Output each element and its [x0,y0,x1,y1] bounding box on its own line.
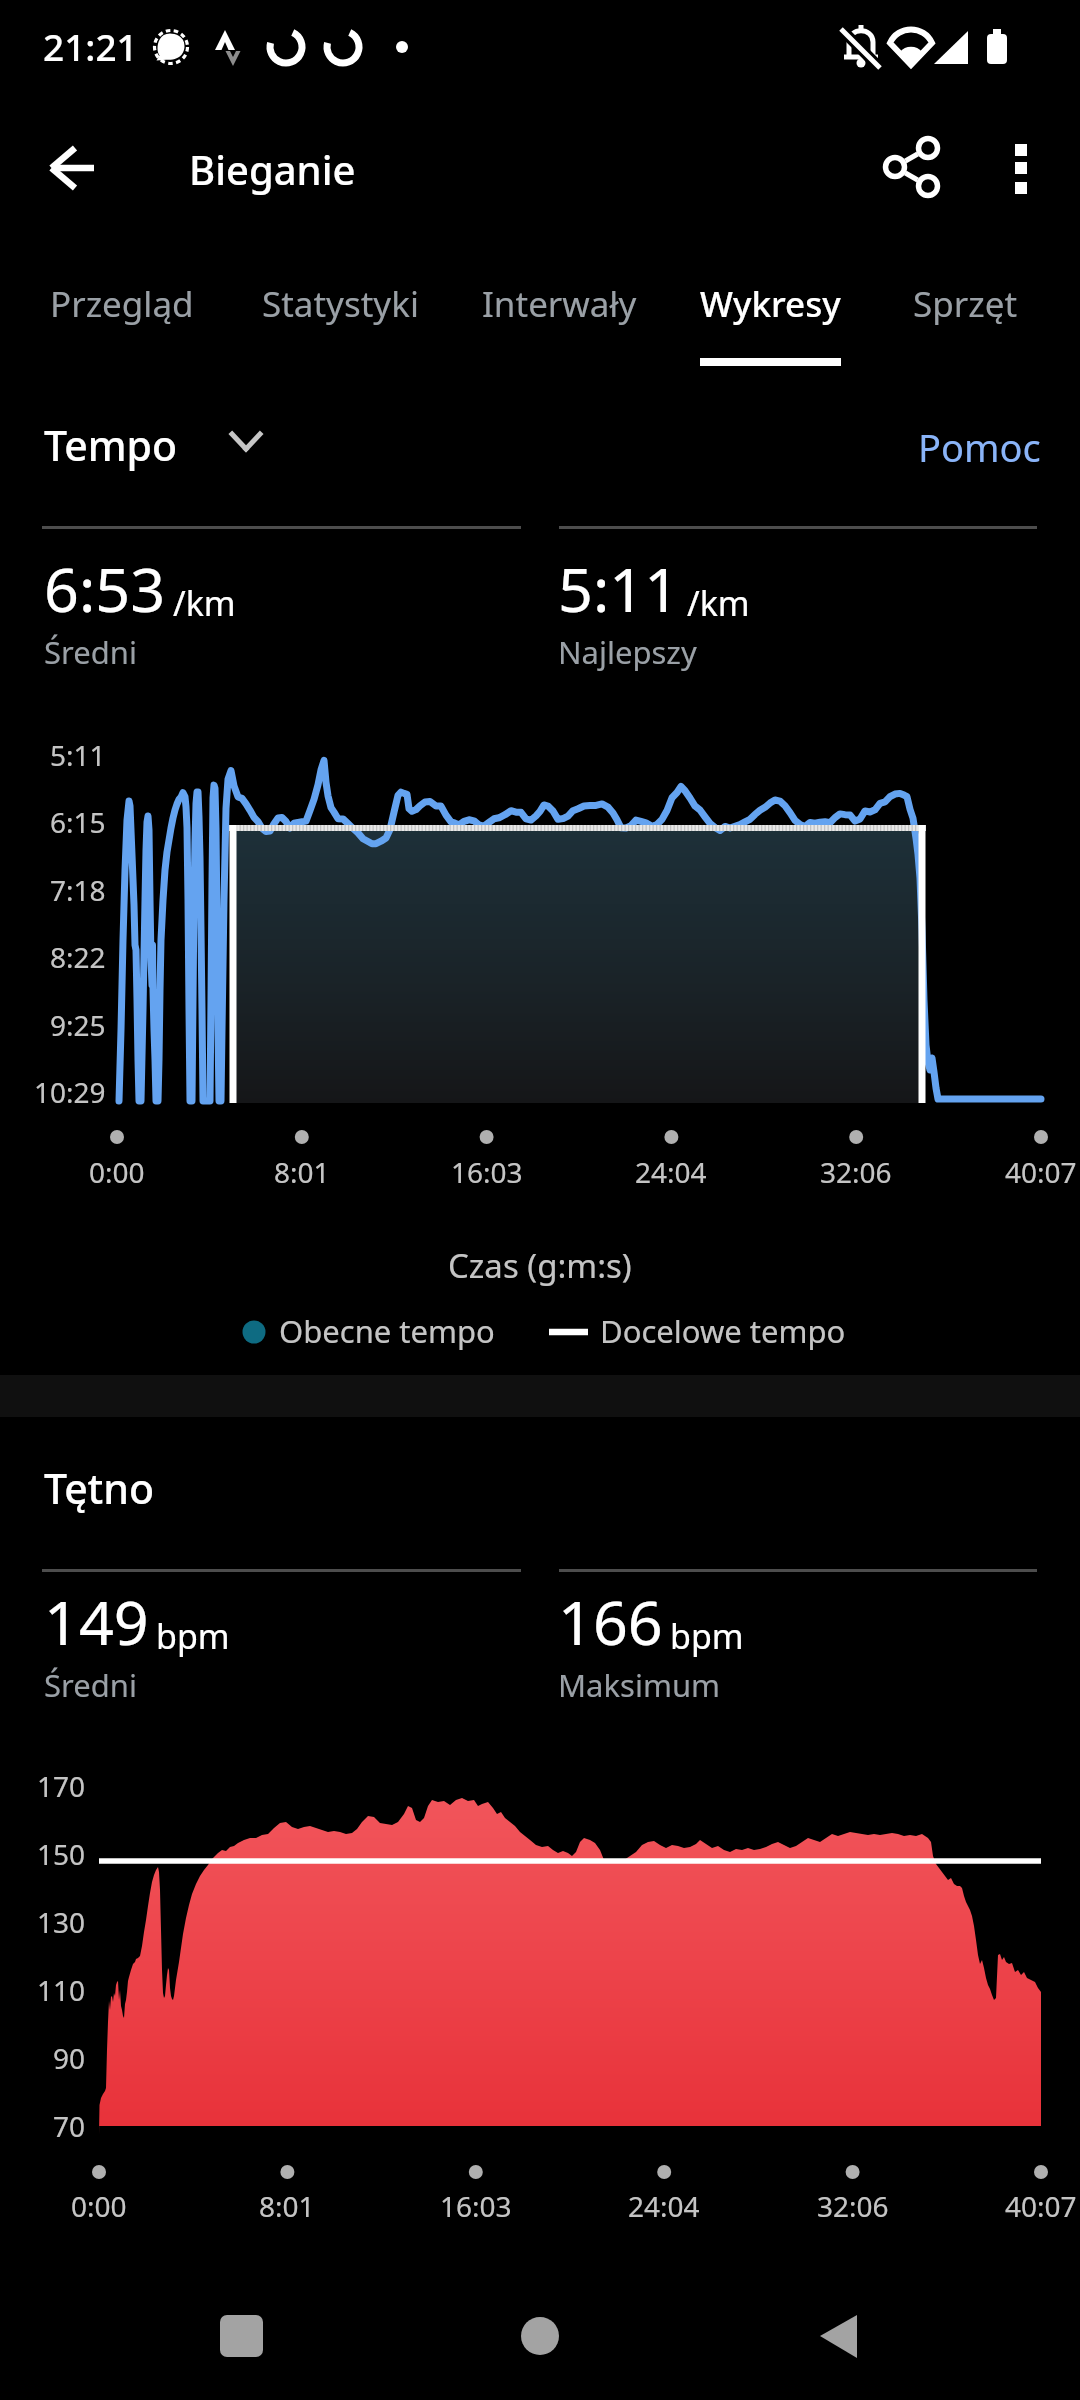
button[interactable]: Przegląd [17,256,227,374]
button[interactable]: Home [490,2270,590,2400]
staticText: 9:25 [50,1006,106,1044]
staticText: 90 [53,2039,86,2077]
button[interactable]: Pomoc [885,410,1057,484]
button[interactable]: Sprzęt [880,256,1050,374]
button[interactable]: Statystyki [230,256,450,374]
staticText: 0:00 [89,1153,145,1191]
staticText: 8:01 [259,2187,315,2225]
staticText: 6:15 [50,803,106,841]
staticText: 21:21 [43,21,138,71]
staticText: Sprzęt [913,280,1018,328]
staticText: 16:03 [440,2187,512,2225]
staticText: 166 [558,1580,663,1663]
staticText: 24:04 [628,2187,700,2225]
button[interactable]: Tempo [34,403,264,479]
staticText: Bieganie [189,142,356,196]
staticText: Interwały [482,280,637,328]
button[interactable]: Recent apps [190,2270,290,2400]
staticText: Docelowe tempo [600,1310,846,1352]
staticText: 32:06 [817,2187,889,2225]
staticText: 150 [37,1835,86,1873]
button[interactable]: Back [790,2270,890,2400]
staticText: 0:00 [71,2187,127,2225]
staticText: 16:03 [451,1153,523,1191]
staticText: Tętno [44,1460,155,1516]
staticText: 40:07 [1005,2187,1077,2225]
staticText: 5:11 [558,547,680,630]
staticText: 24:04 [635,1153,707,1191]
staticText: 32:06 [820,1153,892,1191]
staticText: 149 [44,1580,149,1663]
staticText: 70 [53,2107,86,2145]
button[interactable]: More options [976,125,1068,217]
button[interactable]: Share [866,125,958,217]
staticText: bpm [670,1613,744,1659]
staticText: 6:53 [44,547,166,630]
staticText: Przegląd [50,280,194,328]
button[interactable]: Wykresy [675,256,865,374]
staticText: Najlepszy [558,631,697,673]
staticText: 8:01 [274,1153,330,1191]
staticText: /km [687,580,750,626]
button[interactable]: Tętno [34,1446,204,1522]
staticText: bpm [156,1613,230,1659]
staticText: 7:18 [50,871,106,909]
staticText: 5:11 [50,736,106,774]
staticText: Tempo [44,417,178,473]
staticText: /km [173,580,236,626]
staticText: Obecne tempo [279,1310,495,1352]
staticText: Pomoc [918,421,1041,473]
staticText: 110 [37,1971,86,2009]
button[interactable]: Back [28,125,120,217]
staticText: 10:29 [34,1073,106,1111]
staticText: Wykresy [700,280,841,328]
staticText: 40:07 [1005,1153,1077,1191]
staticText: Czas (g:m:s) [448,1243,632,1288]
staticText: 8:22 [50,938,106,976]
staticText: Maksimum [558,1664,721,1706]
staticText: 170 [37,1767,86,1805]
staticText: Statystyki [262,280,419,328]
staticText: Średni [44,631,137,673]
staticText: 130 [37,1903,86,1941]
staticText: Średni [44,1664,137,1706]
button[interactable]: Interwały [454,256,664,374]
